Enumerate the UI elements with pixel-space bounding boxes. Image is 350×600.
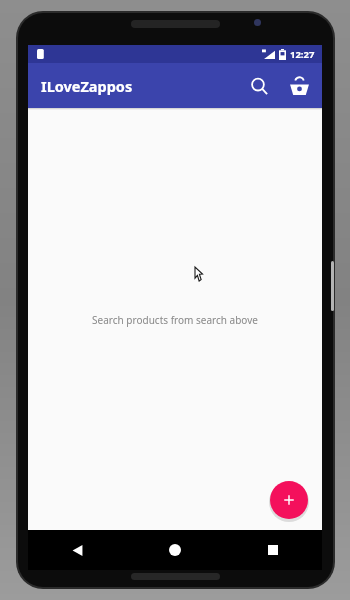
button[interactable]: Home: [126, 530, 224, 570]
button[interactable]: Shopping cart: [279, 66, 319, 106]
staticText: Search products from search above: [92, 313, 258, 327]
staticText: ILoveZappos: [41, 76, 133, 96]
button[interactable]: Recent apps: [224, 530, 322, 570]
button[interactable]: Search: [239, 66, 279, 106]
staticText: 12:27: [290, 48, 315, 61]
button[interactable]: Add: [270, 481, 308, 519]
button[interactable]: Back: [28, 530, 126, 570]
